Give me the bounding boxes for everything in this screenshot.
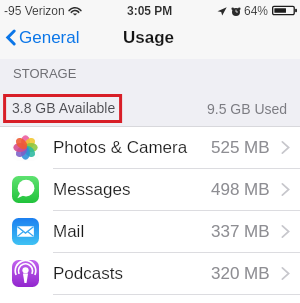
staticText: STORAGE [13,66,77,81]
staticText: 3:05 PM [127,4,173,17]
staticText: 498 MB [211,180,270,199]
staticText: 3.8 GB Available [12,100,116,116]
button[interactable]: General [0,18,90,57]
button[interactable]: Podcasts [0,253,300,294]
staticText: General [19,28,80,47]
staticText: 525 MB [211,138,270,157]
button[interactable]: Mail [0,211,300,252]
staticText: Usage [123,28,175,47]
staticText: Photos & Camera [53,138,188,157]
staticText: -95 Verizon [4,4,65,17]
staticText: 64% [244,4,269,17]
staticText: Messages [53,180,131,199]
button[interactable]: Photos & Camera [0,127,300,168]
staticText: 9.5 GB Used [207,101,288,117]
staticText: Podcasts [53,264,123,283]
button[interactable]: Messages [0,169,300,210]
staticText: 320 MB [211,264,270,283]
staticText: 337 MB [211,222,270,241]
staticText: Mail [53,222,85,241]
